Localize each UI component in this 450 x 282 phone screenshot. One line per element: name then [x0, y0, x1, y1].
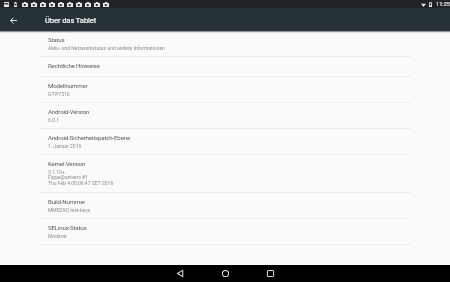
staticText: Rechtliche Hinweise — [48, 62, 100, 69]
staticText: MMB29Q test-keys — [48, 207, 91, 213]
button[interactable]: Zurück — [6, 13, 20, 27]
staticText: Android-Version — [48, 108, 90, 115]
button[interactable]: Rechtliche Hinweise — [0, 56, 450, 76]
staticText: Android-Sicherheitspatch-Ebene — [48, 134, 131, 141]
staticText: Über das Tablet — [45, 16, 97, 25]
button[interactable]: Übersicht — [262, 265, 278, 281]
staticText: Modellnummer — [48, 82, 88, 89]
staticText: 3.1.10+ — [48, 169, 65, 175]
staticText: Kernel-Version — [48, 160, 86, 167]
button[interactable]: Kernel-Version — [0, 154, 450, 192]
staticText: Figue@univers #1 — [48, 174, 88, 180]
staticText: Build-Nummer — [48, 198, 86, 205]
staticText: Akku- und Netzwerkstatus und andere Info… — [48, 45, 165, 51]
button[interactable]: Startbildschirm — [217, 265, 233, 281]
staticText: Status — [48, 36, 65, 43]
button[interactable]: Build-Nummer — [0, 192, 450, 218]
staticText: 6.0.1 — [48, 117, 60, 123]
button[interactable]: Android-Version — [0, 102, 450, 128]
staticText: Moderat — [48, 233, 67, 239]
staticText: Thu Feb 4 00:06:47 CET 2016 — [48, 180, 114, 186]
button[interactable]: Status — [0, 30, 450, 56]
staticText: 11:25 — [436, 1, 450, 8]
staticText: 1. Januar 2016 — [48, 143, 82, 149]
button[interactable]: Modellnummer — [0, 76, 450, 102]
staticText: GT-P7510 — [48, 91, 70, 97]
button[interactable]: Zurück — [172, 265, 188, 281]
button[interactable]: SELinux-Status — [0, 218, 450, 244]
button[interactable]: Android-Sicherheitspatch-Ebene — [0, 128, 450, 154]
staticText: SELinux-Status — [48, 224, 87, 231]
